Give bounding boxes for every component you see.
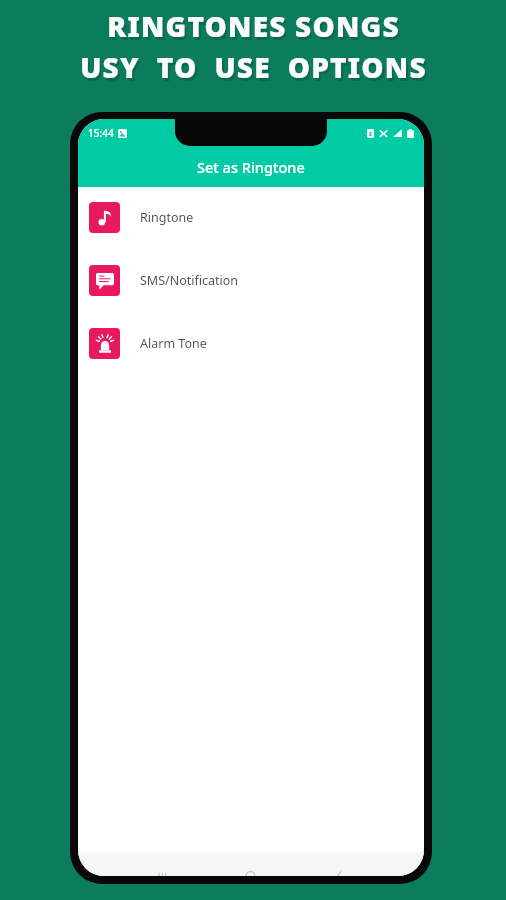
button[interactable]: Recent apps	[118, 852, 206, 876]
staticText: 15:44	[88, 126, 114, 140]
button[interactable]: SMS/Notification	[78, 264, 424, 297]
staticText: USY TO USE OPTIONS	[82, 51, 429, 89]
button[interactable]: Alarm Tone	[78, 327, 424, 360]
staticText: RINGTONES SONGS	[109, 10, 402, 48]
staticText: Alarm Tone	[140, 335, 207, 352]
staticText: Set as Ringtone	[197, 157, 305, 177]
staticText: RINGTONES SONGS	[107, 7, 400, 45]
staticText: Ringtone	[140, 209, 194, 226]
staticText: SMS/Notification	[140, 272, 239, 289]
button[interactable]: Ringtone	[78, 201, 424, 234]
staticText: USY TO USE OPTIONS	[80, 48, 427, 86]
button[interactable]: Home	[206, 852, 295, 876]
